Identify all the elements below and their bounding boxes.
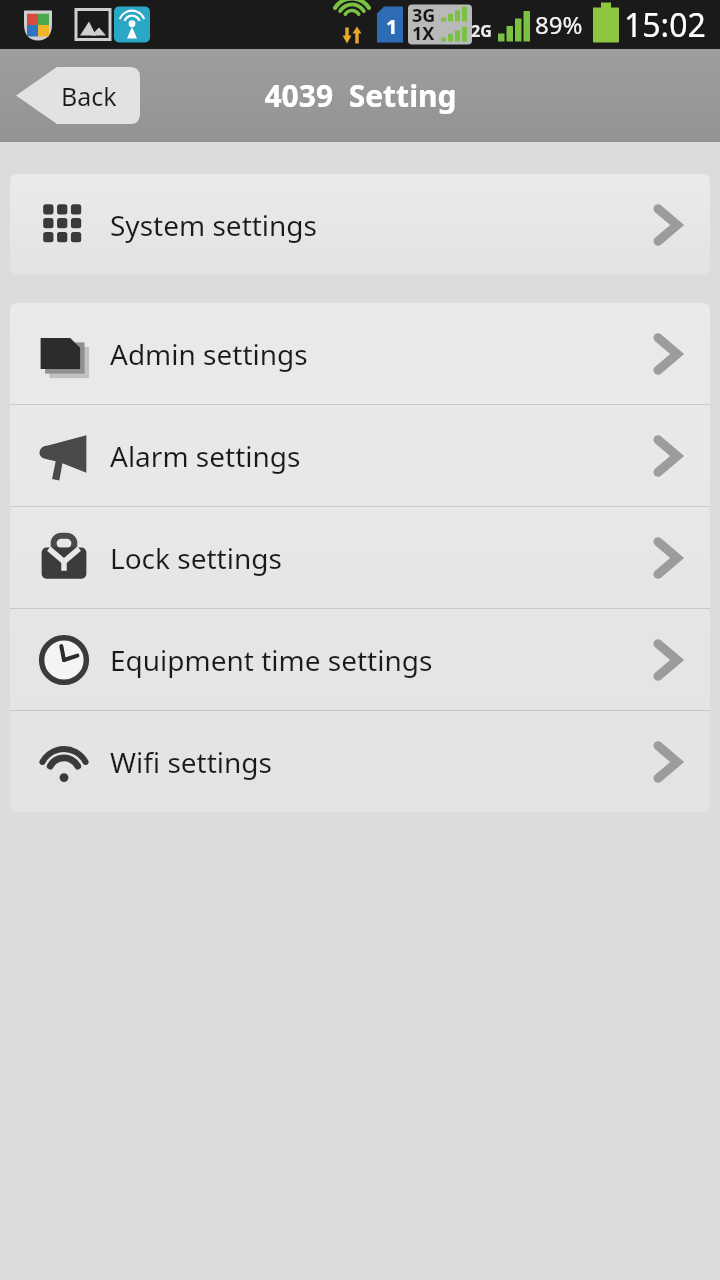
staticText: Equipment time settings — [110, 641, 652, 679]
button[interactable]: Equipment time settings — [10, 609, 710, 710]
staticText: 2G — [471, 20, 492, 42]
button[interactable]: Alarm settings — [10, 405, 710, 506]
staticText: 15:02 — [624, 3, 706, 47]
staticText: 1 — [386, 13, 398, 40]
button[interactable]: Back — [16, 67, 140, 124]
staticText: 3G — [412, 3, 436, 28]
staticText: Lock settings — [110, 539, 652, 577]
staticText: 89% — [535, 8, 583, 41]
staticText: Alarm settings — [110, 437, 652, 475]
staticText: Back — [61, 79, 117, 113]
button[interactable]: Admin settings — [10, 303, 710, 404]
staticText: 1X — [412, 21, 435, 46]
staticText: Admin settings — [110, 335, 652, 373]
button[interactable]: System settings — [10, 174, 710, 275]
button[interactable]: Lock settings — [10, 507, 710, 608]
button[interactable]: Wifi settings — [10, 711, 710, 812]
staticText: 4039 Setting — [264, 75, 457, 116]
staticText: System settings — [110, 206, 652, 244]
staticText: Wifi settings — [110, 743, 652, 781]
